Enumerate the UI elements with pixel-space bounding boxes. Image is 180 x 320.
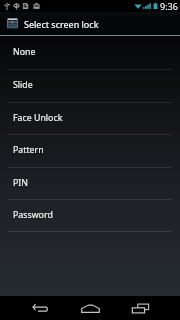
staticText: Pattern	[13, 144, 44, 156]
button[interactable]: Password	[0, 200, 180, 232]
staticText: 9:36	[160, 0, 178, 12]
button[interactable]: Select screen lock	[0, 12, 180, 35]
button[interactable]: Face Unlock	[0, 103, 180, 135]
button[interactable]: PIN	[0, 168, 180, 200]
staticText: Select screen lock	[24, 18, 99, 30]
staticText: Slide	[13, 79, 33, 91]
staticText: None	[13, 46, 36, 58]
button[interactable]: Home	[65, 296, 115, 320]
button[interactable]: Slide	[0, 70, 180, 103]
staticText: Face Unlock	[13, 112, 63, 124]
button[interactable]: Back	[15, 296, 65, 320]
button[interactable]: Pattern	[0, 135, 180, 168]
button[interactable]: Recent apps	[115, 296, 165, 320]
staticText: Password	[13, 209, 53, 221]
button[interactable]: None	[0, 37, 180, 70]
staticText: PIN	[13, 177, 28, 189]
